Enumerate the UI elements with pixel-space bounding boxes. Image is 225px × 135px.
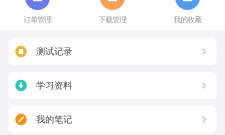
staticText: 我的笔记 [36, 114, 72, 125]
staticText: 下载管理 [98, 15, 126, 24]
button[interactable]: 订单管理 [0, 0, 75, 30]
button[interactable]: 学习资料 [8, 72, 216, 99]
staticText: 测试记录 [36, 46, 72, 57]
button[interactable]: 我的笔记 [8, 106, 216, 133]
staticText: 我的收藏 [173, 15, 201, 24]
button[interactable]: 测试记录 [8, 38, 216, 65]
button[interactable]: 我的收藏 [150, 0, 225, 30]
staticText: 订单管理 [23, 15, 51, 24]
staticText: 学习资料 [36, 80, 72, 91]
button[interactable]: 下载管理 [75, 0, 150, 30]
